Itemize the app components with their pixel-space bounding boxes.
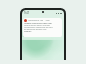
staticText: Notifications App · now [28,19,50,22]
staticText: View all [24,30,32,33]
staticText: 9:41 [24,11,30,15]
button[interactable]: Notifications App · now [23,18,62,37]
staticText: Update something right now [24,22,52,25]
staticText: Lorem ipsum dolor sit amet consectetur a… [24,24,54,31]
